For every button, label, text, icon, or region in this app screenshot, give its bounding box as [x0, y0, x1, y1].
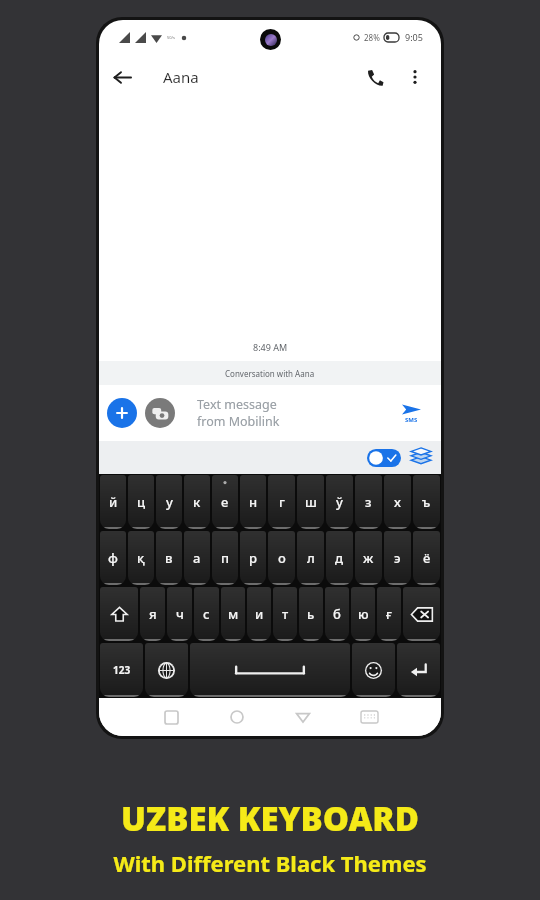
other: Space — [234, 664, 306, 676]
staticText: ч — [176, 605, 184, 623]
button[interactable]: Camera — [145, 398, 175, 428]
button[interactable]: з — [355, 475, 382, 529]
button[interactable]: ъ — [413, 475, 440, 529]
button[interactable]: ж — [355, 531, 382, 585]
button[interactable]: и — [247, 587, 271, 641]
other: Backspace — [411, 607, 433, 622]
button[interactable]: д — [326, 531, 353, 585]
staticText: м — [228, 605, 239, 623]
button[interactable]: Back — [283, 698, 323, 736]
staticText: ф — [108, 549, 118, 567]
button[interactable]: у — [156, 475, 182, 529]
staticText: п — [221, 549, 230, 567]
button[interactable]: Back — [99, 54, 145, 100]
staticText: ж — [363, 549, 374, 567]
button[interactable]: й — [100, 475, 126, 529]
other: Change language — [157, 661, 176, 680]
button[interactable]: х — [384, 475, 411, 529]
staticText: 123 — [113, 663, 131, 677]
staticText: ь — [307, 605, 315, 623]
button[interactable]: Enter — [397, 643, 440, 697]
button[interactable]: Home — [217, 698, 257, 736]
staticText: е — [221, 493, 229, 511]
staticText: UZBEK KEYBOARD — [121, 796, 419, 841]
staticText: й — [109, 493, 118, 511]
button[interactable]: ё — [413, 531, 440, 585]
button[interactable]: л — [297, 531, 324, 585]
button[interactable]: Toggle theme — [367, 447, 401, 469]
staticText: ъ — [422, 493, 431, 511]
button[interactable]: Add attachment — [107, 398, 137, 428]
other: Enter — [409, 661, 428, 680]
button[interactable]: в — [156, 531, 182, 585]
staticText: 8:49 AM — [253, 341, 288, 353]
staticText: т — [282, 605, 289, 623]
button[interactable]: ф — [100, 531, 126, 585]
staticText: ғ — [386, 605, 392, 623]
button[interactable]: Shift — [100, 587, 138, 641]
staticText: р — [249, 549, 258, 567]
staticText: from Mobilink — [197, 413, 280, 430]
button[interactable]: ю — [351, 587, 375, 641]
staticText: With Different Black Themes — [113, 848, 427, 878]
button[interactable]: т — [273, 587, 297, 641]
other: Emoji — [364, 661, 383, 680]
button[interactable]: а — [184, 531, 210, 585]
button[interactable]: Themes — [407, 444, 435, 472]
button[interactable]: е — [212, 475, 238, 529]
button[interactable]: п — [212, 531, 238, 585]
button[interactable]: Backspace — [403, 587, 440, 641]
button[interactable]: қ — [128, 531, 154, 585]
button[interactable]: с — [194, 587, 219, 641]
staticText: к — [193, 493, 201, 511]
other: Shift — [111, 606, 128, 623]
button[interactable]: More options — [395, 57, 435, 97]
staticText: ш — [305, 493, 317, 511]
staticText: л — [307, 549, 315, 567]
button[interactable]: Recent apps — [151, 698, 191, 736]
button[interactable]: Emoji — [352, 643, 395, 697]
staticText: г — [279, 493, 285, 511]
button[interactable]: Call — [355, 57, 395, 97]
button[interactable]: ш — [297, 475, 324, 529]
button[interactable]: н — [240, 475, 266, 529]
staticText: ё — [423, 549, 431, 567]
button[interactable]: к — [184, 475, 210, 529]
staticText: з — [365, 493, 372, 511]
button[interactable]: Change language — [145, 643, 188, 697]
button[interactable]: ц — [128, 475, 154, 529]
staticText: SMS — [405, 416, 418, 424]
button[interactable]: ғ — [377, 587, 401, 641]
staticText: 9:05 — [405, 31, 423, 43]
staticText: я — [149, 605, 157, 623]
staticText: 28% — [364, 32, 380, 43]
button[interactable]: я — [140, 587, 165, 641]
staticText: Aana — [163, 67, 199, 87]
button[interactable]: б — [325, 587, 349, 641]
button[interactable]: Send SMS — [389, 390, 433, 436]
staticText: э — [394, 549, 401, 567]
staticText: о — [278, 549, 286, 567]
button[interactable]: э — [384, 531, 411, 585]
button[interactable]: Hide keyboard — [349, 698, 389, 736]
button[interactable]: о — [268, 531, 295, 585]
staticText: в — [165, 549, 173, 567]
button[interactable]: ь — [299, 587, 323, 641]
staticText: у — [166, 493, 173, 511]
staticText: Text message — [197, 396, 277, 413]
staticText: х — [394, 493, 401, 511]
button[interactable]: Text message — [183, 390, 433, 436]
staticText: и — [255, 605, 264, 623]
staticText: б — [333, 605, 341, 623]
staticText: д — [335, 549, 344, 567]
staticText: ю — [358, 605, 369, 623]
button[interactable]: 123 — [100, 643, 143, 697]
button[interactable]: Space — [190, 643, 350, 697]
button[interactable]: ч — [167, 587, 192, 641]
button[interactable]: р — [240, 531, 266, 585]
button[interactable]: м — [221, 587, 245, 641]
button[interactable]: г — [268, 475, 295, 529]
staticText: ў — [336, 493, 343, 511]
staticText: қ — [137, 549, 145, 567]
button[interactable]: ў — [326, 475, 353, 529]
